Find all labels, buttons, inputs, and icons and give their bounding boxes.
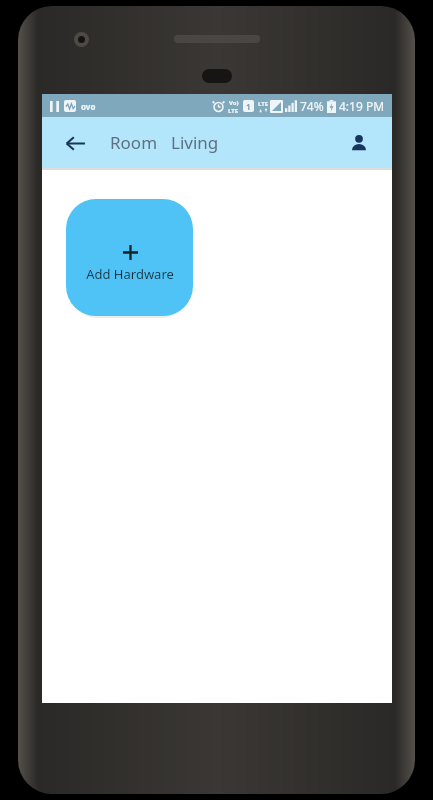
button[interactable]: Add Hardware (66, 199, 193, 316)
staticText: LTE (258, 100, 269, 108)
button[interactable]: Account (342, 126, 376, 160)
button[interactable]: Back (58, 126, 92, 160)
staticText: Living (171, 131, 219, 154)
staticText: Room (110, 131, 158, 154)
button[interactable]: Room (110, 131, 219, 154)
staticText: Add Hardware (86, 265, 174, 283)
staticText: 1 (246, 101, 251, 112)
staticText: Vo) (229, 99, 239, 107)
staticText: 74% (300, 98, 324, 114)
staticText: LTE (228, 107, 239, 114)
staticText: ovo (81, 101, 96, 112)
staticText: 4:19 PM (339, 98, 385, 114)
